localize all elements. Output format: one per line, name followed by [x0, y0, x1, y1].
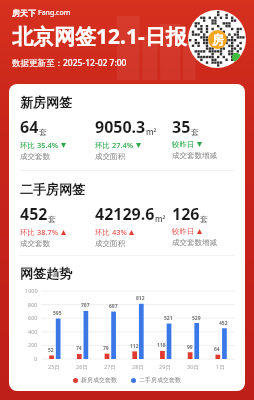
staticText: 套: [191, 127, 199, 137]
staticText: 成交套数增减: [172, 238, 217, 247]
staticText: 新房成交套数: [81, 376, 117, 384]
staticText: 较昨日: [172, 227, 195, 236]
staticText: 26日: [76, 363, 88, 371]
staticText: 网签趋势: [20, 265, 72, 281]
button[interactable]: 42129.6: [95, 203, 172, 248]
staticText: 30日: [187, 363, 199, 371]
staticText: 42129.6: [95, 203, 155, 225]
staticText: 成交套数: [20, 152, 50, 161]
staticText: 套: [48, 214, 56, 224]
staticText: 北京网签12.1-日报: [12, 22, 187, 51]
staticText: 新房网签: [20, 94, 72, 110]
button[interactable]: 新房成交套数: [73, 376, 117, 384]
staticText: 35: [172, 116, 191, 138]
staticText: 较昨日: [172, 140, 195, 149]
staticText: 74: [76, 345, 82, 352]
staticText: 房: [212, 32, 224, 47]
staticText: 环比 27.4%: [95, 140, 134, 150]
staticText: 126: [172, 203, 200, 225]
staticText: 99: [187, 344, 193, 351]
staticText: 成交套数: [20, 239, 50, 248]
button[interactable]: 452: [20, 203, 95, 248]
staticText: 环比 38.7%: [20, 227, 59, 237]
staticText: 27日: [104, 363, 116, 371]
staticText: 二手房成交套数: [139, 376, 181, 384]
button[interactable]: 二手房成交套数: [131, 376, 181, 384]
staticText: Fang.com: [38, 8, 71, 18]
staticText: 812: [136, 295, 145, 302]
staticText: 1日: [216, 363, 225, 371]
staticText: 25日: [48, 363, 60, 371]
staticText: 600: [28, 314, 38, 321]
staticText: 112: [130, 343, 139, 350]
staticText: 79: [103, 345, 109, 352]
staticText: 400: [28, 328, 38, 335]
staticText: 套: [39, 127, 47, 137]
staticText: 1000: [25, 287, 38, 294]
staticText: 0: [34, 355, 38, 362]
staticText: 套: [200, 214, 208, 224]
staticText: 环比 43%: [95, 227, 127, 237]
staticText: m²: [155, 213, 166, 224]
staticText: 环比 35.4%: [20, 140, 59, 150]
button[interactable]: 9050.3: [95, 116, 172, 161]
staticText: 成交套数增减: [172, 151, 217, 160]
staticText: 707: [81, 302, 90, 309]
staticText: 800: [28, 301, 38, 308]
staticText: 成交面积: [95, 152, 125, 161]
staticText: 二手房网签: [20, 181, 85, 197]
staticText: 529: [192, 315, 201, 322]
button[interactable]: 64: [20, 116, 95, 161]
staticText: 200: [28, 341, 38, 348]
staticText: 697: [109, 303, 118, 310]
staticText: 118: [157, 342, 166, 349]
staticText: 成交面积: [95, 239, 125, 248]
button[interactable]: 扫码关注公众号: [188, 10, 246, 68]
staticText: 52: [48, 347, 54, 354]
staticText: 64: [214, 346, 220, 353]
button[interactable]: 126: [172, 203, 239, 247]
staticText: 28日: [132, 363, 144, 371]
staticText: 29日: [159, 363, 171, 371]
staticText: 房天下: [12, 8, 36, 18]
staticText: 452: [20, 203, 48, 225]
staticText: 64: [20, 116, 39, 138]
button[interactable]: 35: [172, 116, 239, 160]
staticText: 数据更新至：2025-12-02 7:00: [12, 57, 127, 69]
staticText: 9050.3: [95, 116, 146, 138]
staticText: 595: [53, 310, 62, 317]
staticText: 521: [164, 315, 173, 322]
staticText: 452: [219, 320, 228, 327]
staticText: m²: [146, 126, 157, 137]
